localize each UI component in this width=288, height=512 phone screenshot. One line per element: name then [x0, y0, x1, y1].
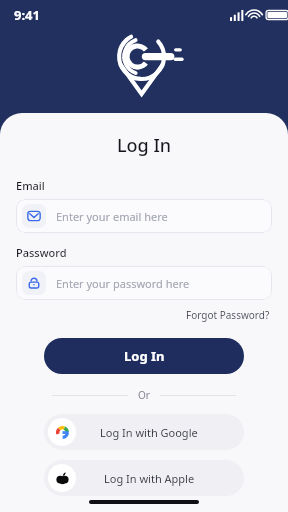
- button[interactable]: Password: [16, 266, 272, 300]
- other: Log In with Google: [56, 426, 69, 439]
- staticText: Enter your email here: [56, 209, 168, 224]
- staticText: Log In: [0, 133, 288, 158]
- staticText: Enter your password here: [56, 276, 190, 291]
- other: Log In with Apple: [56, 472, 69, 485]
- other: Email: [27, 209, 41, 223]
- staticText: Log In: [124, 347, 165, 365]
- button[interactable]: Email: [16, 199, 272, 233]
- other: App logo: [104, 28, 184, 96]
- staticText: Email: [16, 178, 45, 193]
- staticText: Password: [16, 245, 67, 260]
- button[interactable]: Log In with Apple: [44, 460, 244, 496]
- staticText: Or: [138, 388, 150, 402]
- staticText: 9:41: [14, 6, 40, 24]
- staticText: Log In with Google: [100, 425, 198, 440]
- button[interactable]: Forgot Password?: [184, 306, 272, 324]
- button[interactable]: Log In: [44, 338, 244, 374]
- button[interactable]: Log In with Google: [44, 414, 244, 450]
- other: Password: [27, 276, 41, 290]
- staticText: Log In with Apple: [104, 471, 195, 486]
- staticText: Forgot Password?: [186, 308, 270, 322]
